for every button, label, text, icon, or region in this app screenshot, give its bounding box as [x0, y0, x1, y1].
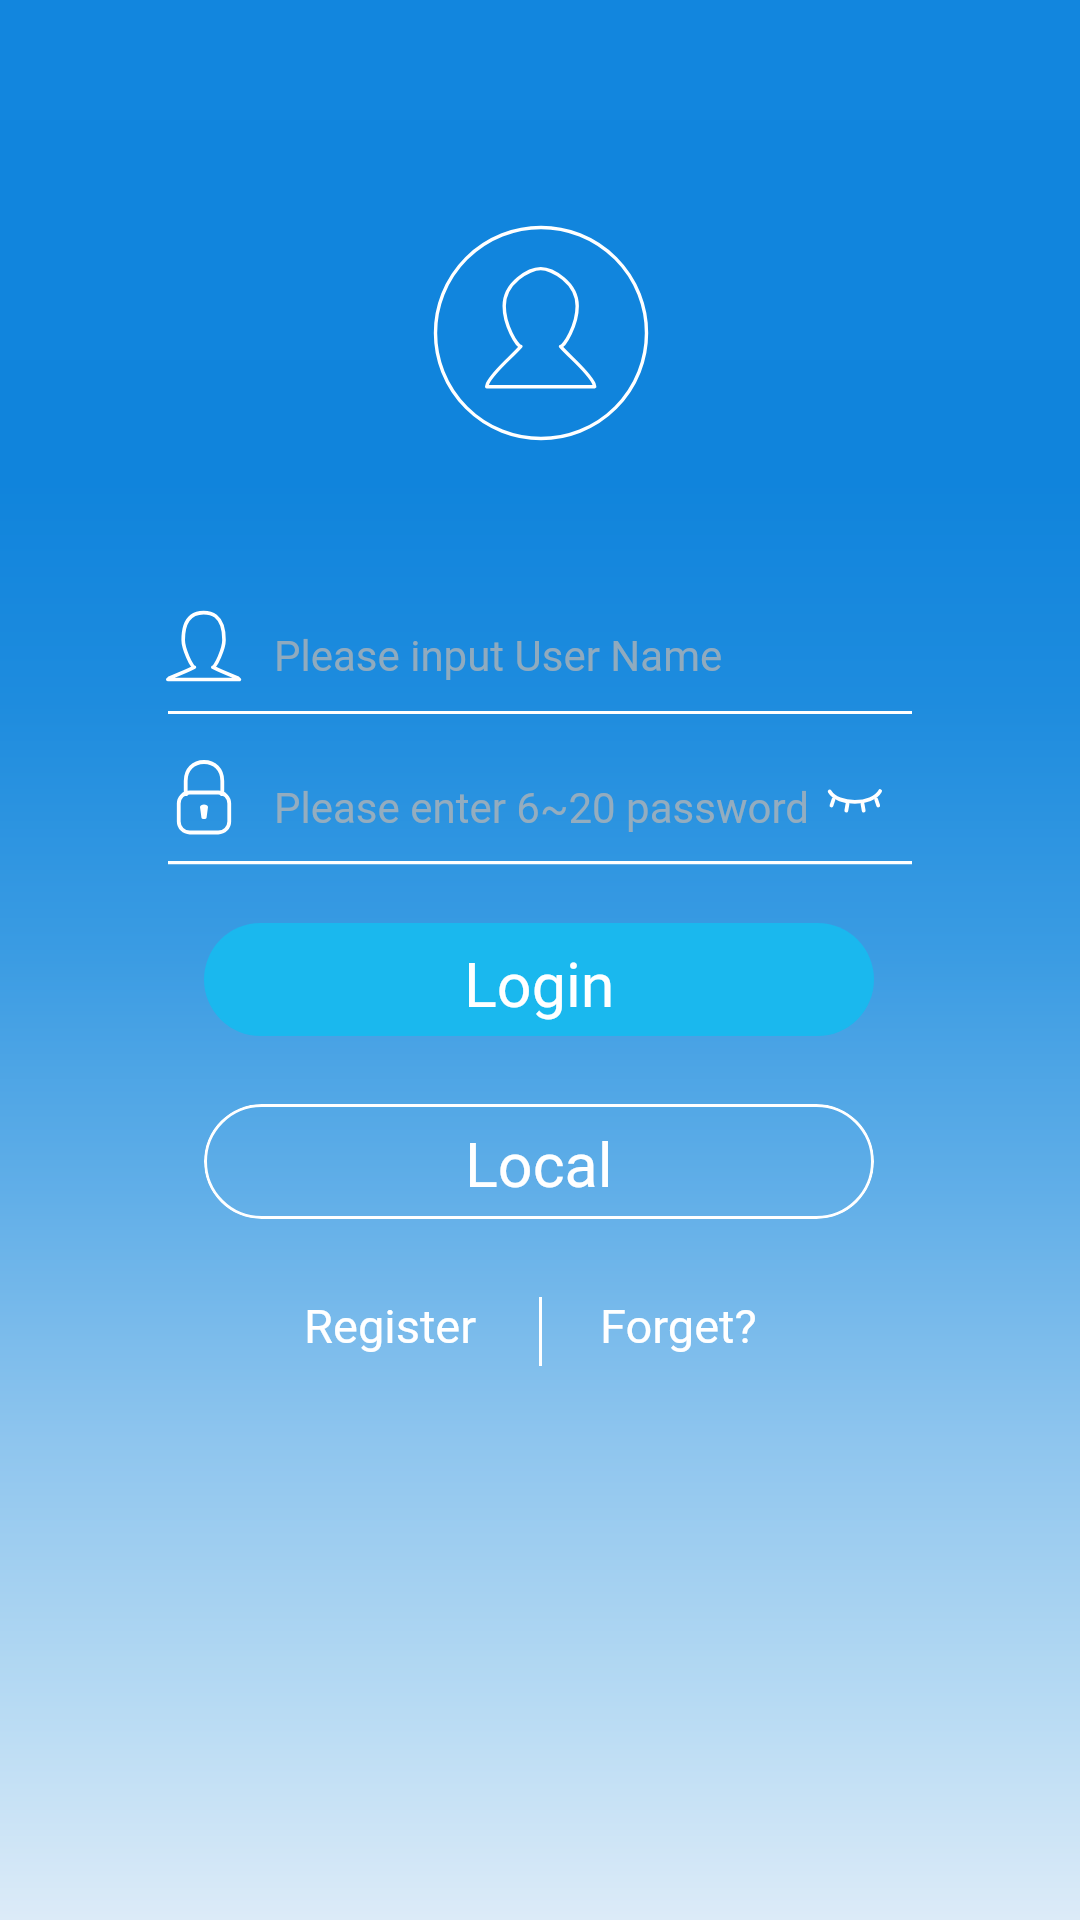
button[interactable]: Local	[204, 1104, 874, 1219]
button[interactable]: Forget?	[600, 1288, 832, 1364]
staticText: Login	[464, 950, 615, 1021]
button[interactable]: Login	[204, 923, 874, 1036]
staticText: Please input User Name	[274, 632, 723, 681]
staticText: Local	[465, 1130, 613, 1201]
staticText: Register	[304, 1299, 477, 1354]
staticText: Forget?	[600, 1299, 757, 1354]
button[interactable]: Register	[245, 1288, 477, 1364]
button[interactable]: Please enter 6~20 password	[168, 752, 912, 867]
button[interactable]: Show password	[808, 764, 892, 848]
button[interactable]: Please input User Name	[168, 600, 912, 715]
staticText: Please enter 6~20 password	[274, 784, 809, 833]
